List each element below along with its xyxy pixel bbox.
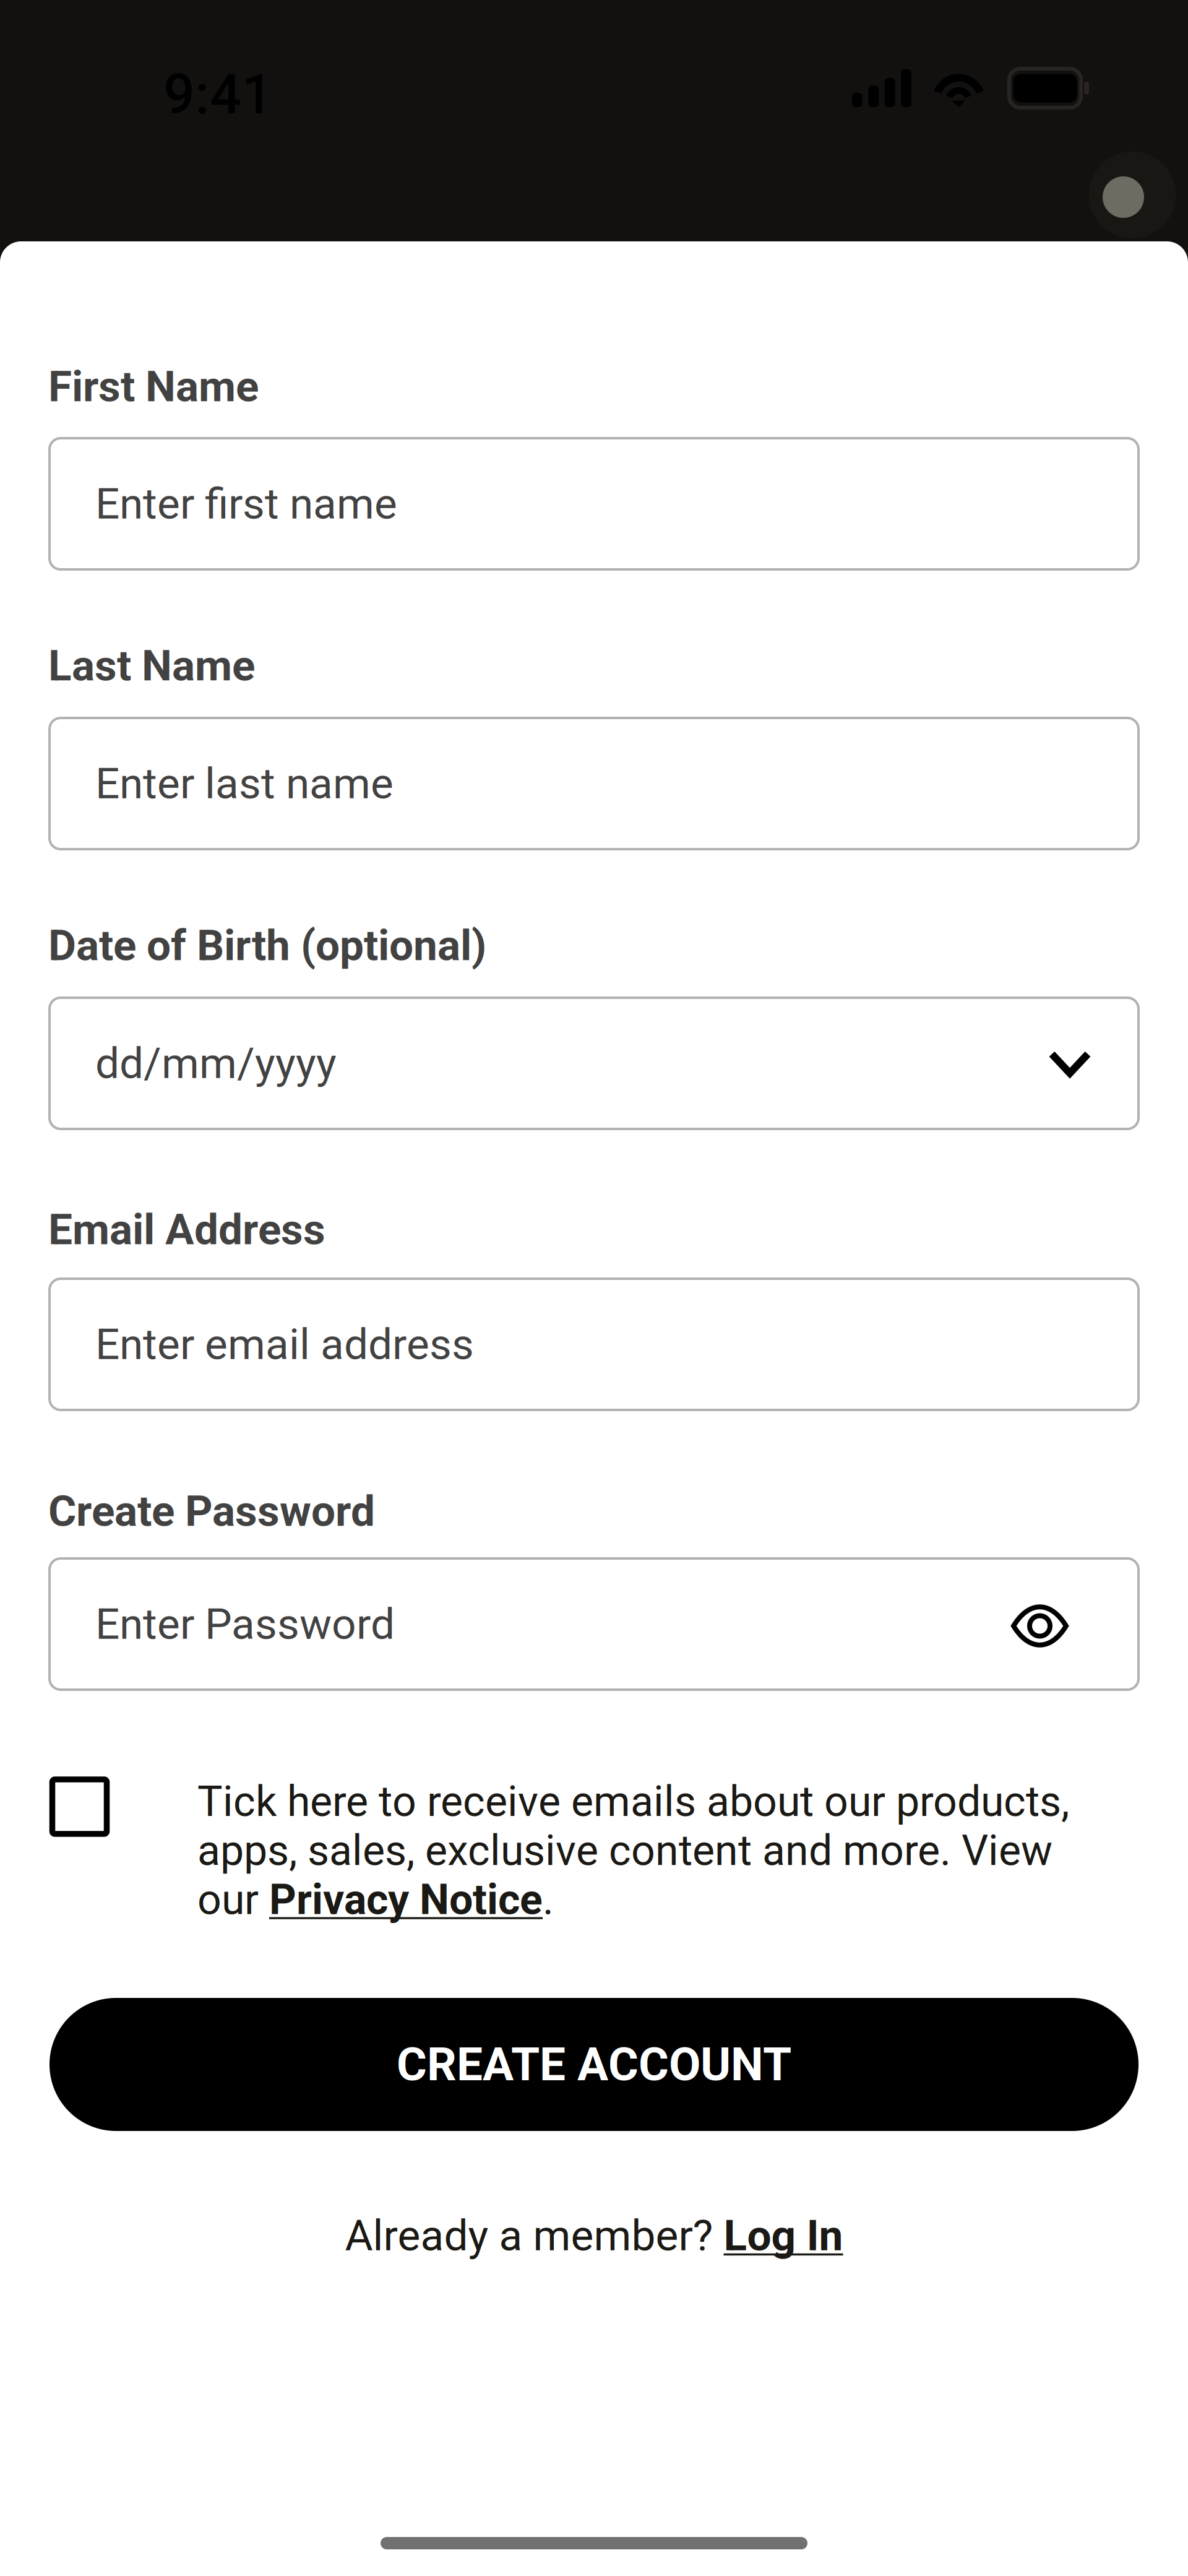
staticText: First Name xyxy=(48,361,259,412)
staticText: CREATE ACCOUNT xyxy=(397,2037,791,2091)
staticText: Already a member? Log In xyxy=(345,2211,843,2260)
button[interactable]: Enter email address xyxy=(49,1279,1138,1410)
button[interactable]: Tick here to receive emails about our pr… xyxy=(49,1771,1138,1932)
staticText: Create Password xyxy=(48,1486,375,1536)
button[interactable]: Enter first name xyxy=(49,438,1138,569)
button[interactable]: CREATE ACCOUNT xyxy=(49,1998,1138,2131)
staticText: Date of Birth (optional) xyxy=(48,920,486,971)
staticText: Enter first name xyxy=(95,479,397,529)
staticText: Enter email address xyxy=(95,1319,474,1369)
staticText: Last Name xyxy=(48,641,255,691)
staticText: Tick here to receive emails about our pr… xyxy=(197,1778,1069,1924)
staticText: Email Address xyxy=(48,1204,325,1255)
staticText: 9:41 xyxy=(163,62,273,127)
button[interactable]: Choose date xyxy=(1049,1051,1091,1077)
staticText: Enter Password xyxy=(95,1599,395,1649)
staticText: Enter last name xyxy=(95,758,394,809)
button[interactable]: Already a member? Log In xyxy=(49,2211,1138,2260)
button[interactable]: Enter Password xyxy=(49,1558,1138,1690)
button[interactable]: Show password xyxy=(1011,1606,1069,1646)
button[interactable]: dd/mm/yyyy xyxy=(49,998,1138,1129)
button[interactable]: Enter last name xyxy=(49,718,1138,849)
staticText: dd/mm/yyyy xyxy=(95,1038,337,1088)
